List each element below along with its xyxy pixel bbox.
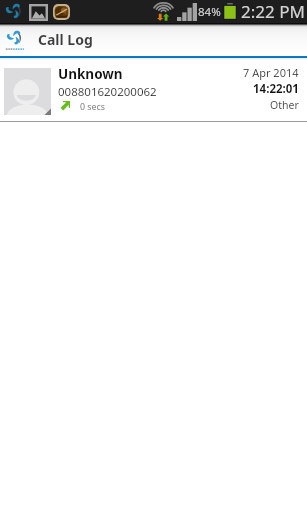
staticText: 2:22 PM <box>241 0 305 23</box>
staticText: Unknown <box>58 65 123 83</box>
button[interactable]: Unknown <box>0 58 307 121</box>
staticText: 14:22:01 <box>253 81 299 97</box>
staticText: Call Log <box>38 30 93 49</box>
staticText: 7 Apr 2014 <box>243 65 299 80</box>
staticText: 0 secs <box>80 101 105 113</box>
staticText: Other <box>270 98 299 112</box>
staticText: 008801620200062 <box>58 84 157 100</box>
button[interactable]: App logo <box>5 28 25 52</box>
staticText: 84% <box>198 4 221 20</box>
